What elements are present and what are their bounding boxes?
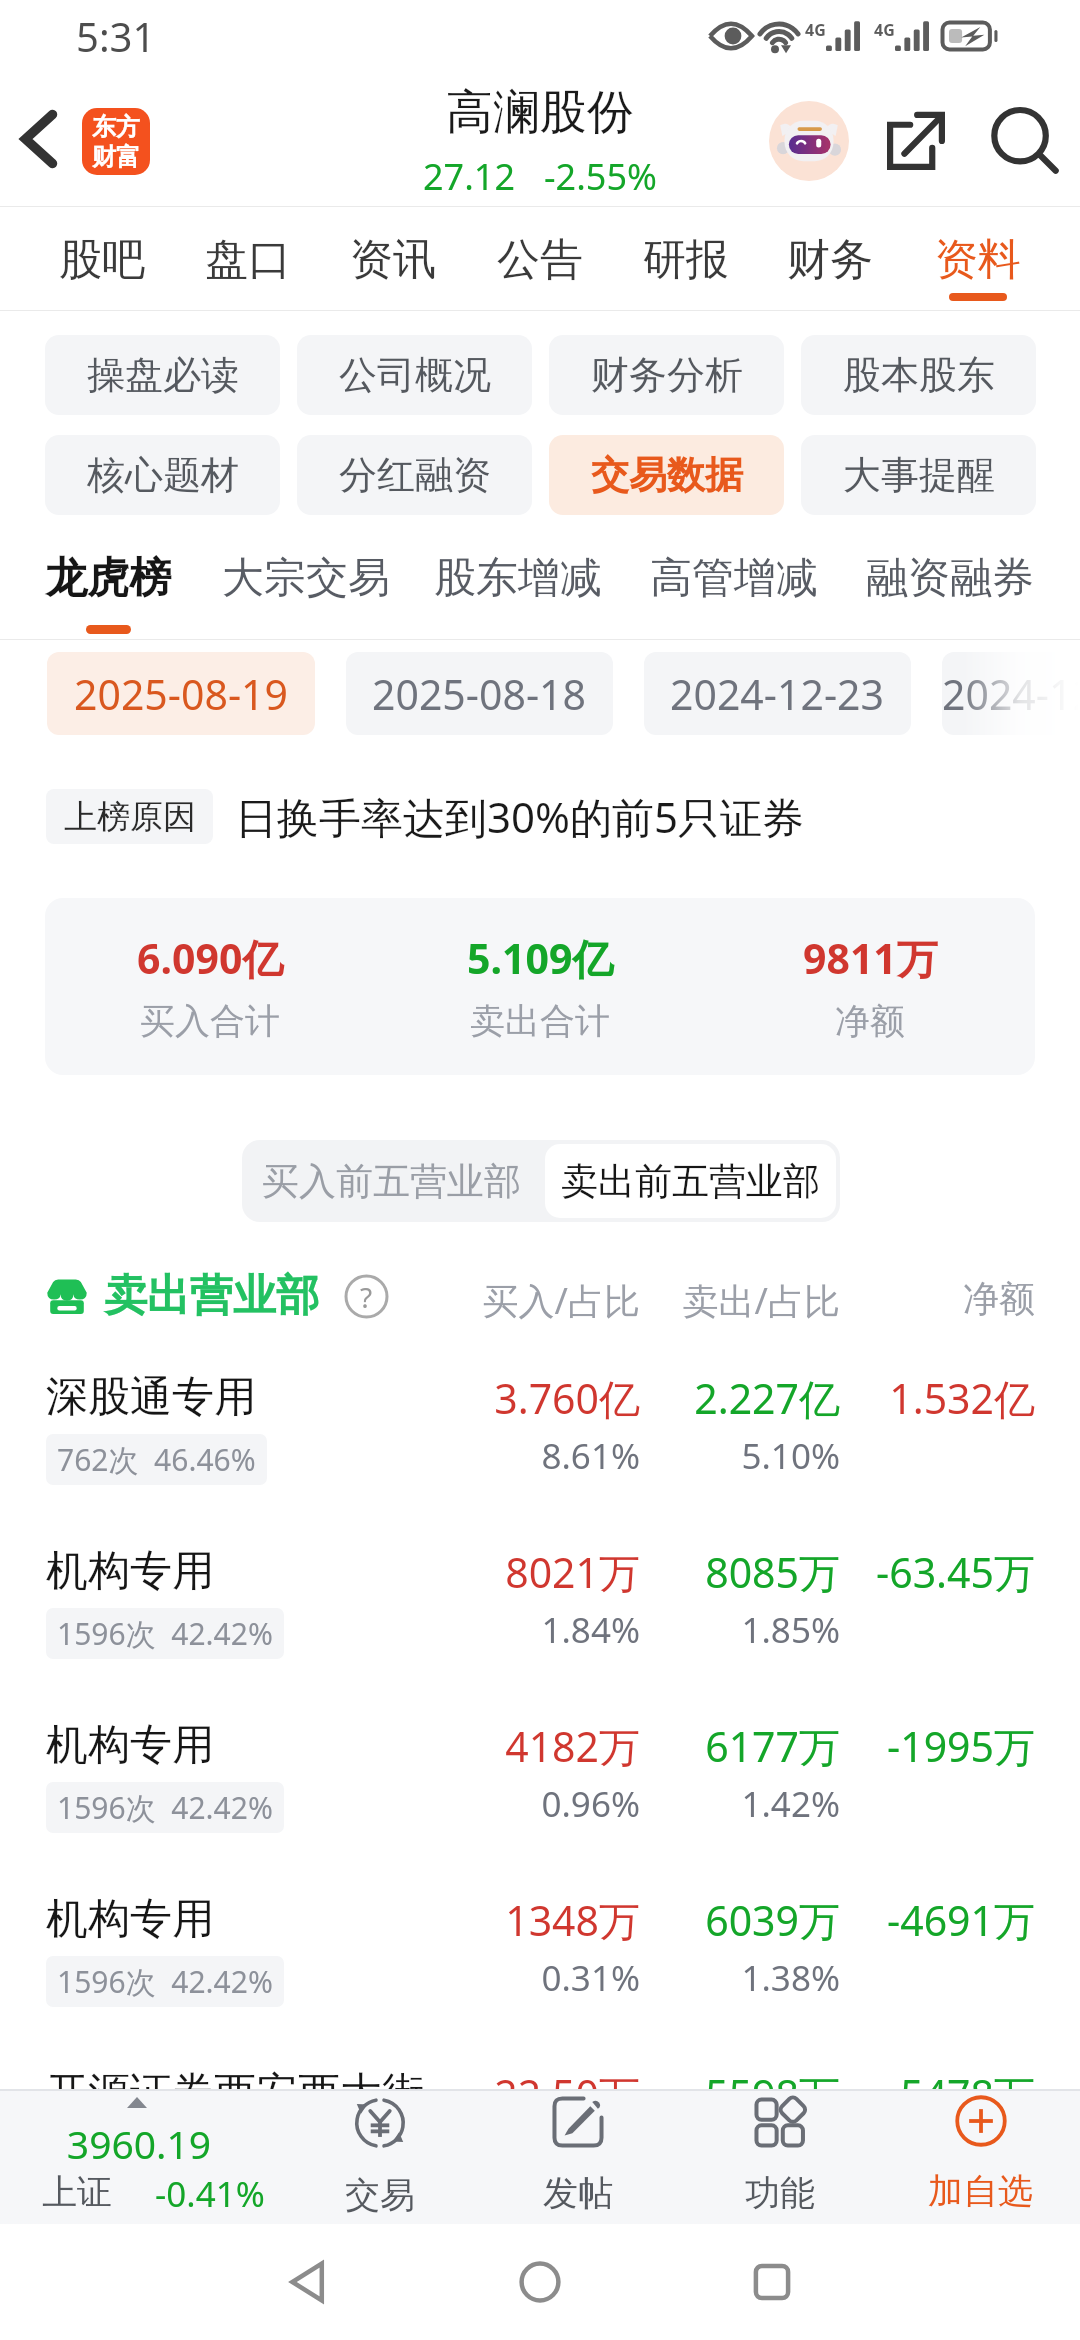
staticText: 交易数据 [591, 451, 743, 499]
button[interactable]: Share [873, 101, 959, 181]
button[interactable]: 交易 [290, 2089, 470, 2224]
staticText: 深股通专用 [46, 1371, 256, 1424]
button[interactable]: 功能 [690, 2089, 870, 2224]
button[interactable]: Back [253, 2227, 363, 2337]
staticText: -63.45万 [860, 1544, 1035, 1600]
staticText: 3960.19 [28, 2117, 250, 2170]
button[interactable]: 2025-08-19 [47, 652, 315, 735]
button[interactable]: Home [485, 2227, 595, 2337]
staticText: 卖出营业部 [104, 1269, 319, 1323]
button[interactable]: 分红融资 [297, 435, 532, 515]
staticText: 核心题材 [87, 451, 239, 499]
staticText: 22.50万 [430, 2066, 640, 2122]
button[interactable]: 开源证券西安西大街 [0, 2064, 1080, 2238]
button[interactable]: 股本股东 [801, 335, 1036, 415]
button[interactable]: 交易数据 [549, 435, 784, 515]
staticText: 机构专用 [46, 1893, 214, 1946]
button[interactable]: 机构专用 [0, 1542, 1080, 1716]
staticText: 开源证券西安西大街 [46, 2067, 424, 2120]
staticText: 上证 [42, 2170, 112, 2214]
button[interactable]: 买入前五营业部 [242, 1140, 541, 1222]
button[interactable]: 操盘必读 [45, 335, 280, 415]
staticText: 股本股东 [843, 351, 995, 399]
staticText: 操盘必读 [87, 351, 239, 399]
staticText: 研报 [643, 233, 729, 287]
staticText: 日换手率达到30%的前5只证券 [235, 788, 804, 845]
staticText: 卖出前五营业部 [561, 1158, 820, 1205]
staticText: 功能 [745, 2171, 815, 2215]
staticText: 机构专用 [46, 1719, 214, 1772]
button[interactable]: East Money [82, 108, 150, 175]
button[interactable]: 股东增减 [432, 552, 604, 640]
staticText: 1596次 42.42% [57, 1787, 273, 1828]
staticText: 净额 [860, 1276, 1035, 1327]
staticText: 卖出/占比 [640, 1276, 840, 1327]
button[interactable]: 资料 [905, 207, 1051, 310]
staticText: 4182万 [430, 1718, 640, 1774]
button[interactable]: 融资融券 [864, 552, 1036, 640]
staticText: 资料 [935, 233, 1021, 287]
staticText: 交易 [345, 2173, 415, 2217]
staticText: 财务分析 [591, 351, 743, 399]
button[interactable]: 2024-12-22 [942, 652, 1080, 735]
button[interactable]: 机构专用 [0, 1890, 1080, 2064]
staticText: 5.109亿 [467, 930, 614, 986]
button[interactable]: 深股通专用 [0, 1368, 1080, 1542]
button[interactable]: Recents [717, 2227, 827, 2337]
staticText: 2.227亿 [640, 1370, 840, 1426]
staticText: 2025-08-19 [74, 666, 289, 722]
button[interactable]: 龙虎榜 [44, 552, 172, 640]
staticText: 高澜股份 [446, 83, 634, 142]
staticText: 发帖 [543, 2171, 613, 2215]
staticText: 2025-08-18 [372, 666, 587, 722]
button[interactable]: 2024-12-23 [644, 652, 911, 735]
button[interactable]: 3960.19 [0, 2089, 290, 2224]
staticText: 0.31% [430, 2128, 640, 2176]
staticText: 762次 46.46% [57, 1439, 256, 1480]
button[interactable]: 大事提醒 [801, 435, 1036, 515]
staticText: 卖出合计 [470, 999, 610, 1043]
button[interactable]: Search [978, 101, 1074, 181]
staticText: 0.96% [430, 1780, 640, 1828]
button[interactable]: 机构专用 [0, 1716, 1080, 1890]
staticText: ? [360, 1278, 373, 1316]
button[interactable]: Back [0, 72, 78, 206]
button[interactable]: Help [344, 1274, 389, 1319]
staticText: 大事提醒 [843, 451, 995, 499]
button[interactable]: 发帖 [488, 2089, 668, 2224]
button[interactable]: 财务分析 [549, 335, 784, 415]
staticText: 买入/占比 [430, 1276, 640, 1327]
button[interactable]: 核心题材 [45, 435, 280, 515]
button[interactable]: 资讯 [320, 207, 466, 310]
button[interactable]: 卖出前五营业部 [545, 1144, 836, 1218]
button[interactable]: 盘口 [175, 207, 321, 310]
button[interactable]: 财务 [757, 207, 903, 310]
button[interactable]: 公司概况 [297, 335, 532, 415]
button[interactable]: 股吧 [29, 207, 175, 310]
staticText: 8021万 [430, 1544, 640, 1600]
staticText: 买入前五营业部 [262, 1158, 521, 1205]
staticText: 6.090亿 [137, 930, 284, 986]
staticText: 1348万 [430, 1892, 640, 1948]
staticText: 大宗交易 [222, 552, 390, 605]
staticText: 财务 [787, 233, 873, 287]
staticText: 5598万 [640, 2066, 840, 2122]
staticText: 买入合计 [140, 999, 280, 1043]
staticText: 盘口 [205, 233, 291, 287]
button[interactable]: 加自选 [890, 2089, 1070, 2224]
button[interactable]: 大宗交易 [220, 552, 392, 640]
button[interactable]: 2025-08-18 [346, 652, 613, 735]
staticText: 1.38% [640, 1954, 840, 2002]
button[interactable]: 研报 [613, 207, 759, 310]
staticText: -0.41% [155, 2170, 265, 2218]
button[interactable]: Assistant [769, 101, 849, 181]
button[interactable]: 公告 [467, 207, 613, 310]
staticText: 公司概况 [339, 351, 491, 399]
staticText: 1596次 42.42% [57, 1961, 273, 2002]
staticText: 27.12 [423, 152, 516, 201]
button[interactable]: 高管增减 [648, 552, 820, 640]
staticText: 5.10% [640, 1432, 840, 1480]
staticText: 1596次 42.42% [57, 1613, 273, 1654]
staticText: 4G [805, 19, 826, 41]
staticText: 8085万 [640, 1544, 840, 1600]
